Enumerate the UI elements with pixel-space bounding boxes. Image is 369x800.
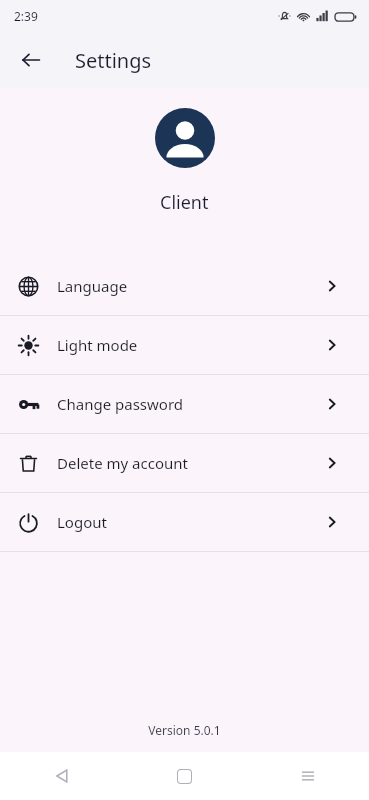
staticText: Delete my account (57, 453, 188, 473)
button[interactable]: Light mode (0, 316, 369, 374)
button[interactable]: Home (123, 752, 246, 800)
button[interactable]: Back (14, 43, 48, 77)
staticText: Change password (57, 394, 184, 414)
staticText: Light mode (57, 335, 138, 355)
staticText: Settings (75, 47, 152, 74)
staticText: Version 5.0.1 (0, 722, 369, 738)
button[interactable]: Logout (0, 493, 369, 551)
staticText: Client (160, 190, 209, 215)
button[interactable]: Change password (0, 375, 369, 433)
button[interactable]: Recent apps (246, 752, 369, 800)
staticText: 2:39 (14, 8, 38, 24)
button[interactable]: Language (0, 257, 369, 315)
staticText: Language (57, 276, 128, 296)
button[interactable]: Delete my account (0, 434, 369, 492)
button[interactable]: Back (0, 752, 123, 800)
staticText: Logout (57, 512, 107, 532)
